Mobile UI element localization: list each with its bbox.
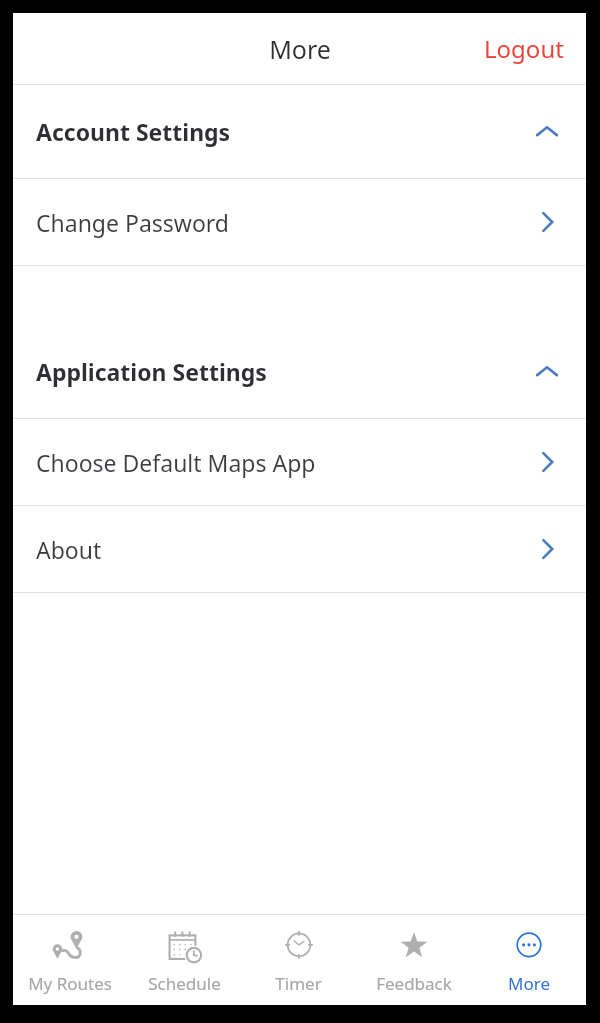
- button[interactable]: Logout: [462, 13, 586, 84]
- staticText: Schedule: [148, 972, 221, 995]
- button[interactable]: Feedback: [356, 915, 471, 1005]
- button[interactable]: Account Settings: [13, 85, 586, 178]
- staticText: Timer: [275, 972, 322, 995]
- button[interactable]: Application Settings: [13, 325, 586, 418]
- button[interactable]: Schedule: [127, 915, 241, 1005]
- button[interactable]: About: [13, 506, 586, 592]
- staticText: Account Settings: [36, 116, 534, 147]
- staticText: Logout: [484, 32, 564, 65]
- button[interactable]: Choose Default Maps App: [13, 419, 586, 505]
- staticText: More: [269, 32, 331, 66]
- button[interactable]: Timer: [241, 915, 356, 1005]
- staticText: About: [36, 534, 534, 565]
- staticText: Application Settings: [36, 356, 534, 387]
- button[interactable]: More: [471, 915, 586, 1005]
- staticText: Feedback: [376, 972, 452, 995]
- button[interactable]: Change Password: [13, 179, 586, 265]
- staticText: My Routes: [28, 972, 112, 995]
- staticText: Choose Default Maps App: [36, 447, 534, 478]
- staticText: Change Password: [36, 207, 534, 238]
- button[interactable]: My Routes: [13, 915, 127, 1005]
- staticText: More: [508, 972, 550, 995]
